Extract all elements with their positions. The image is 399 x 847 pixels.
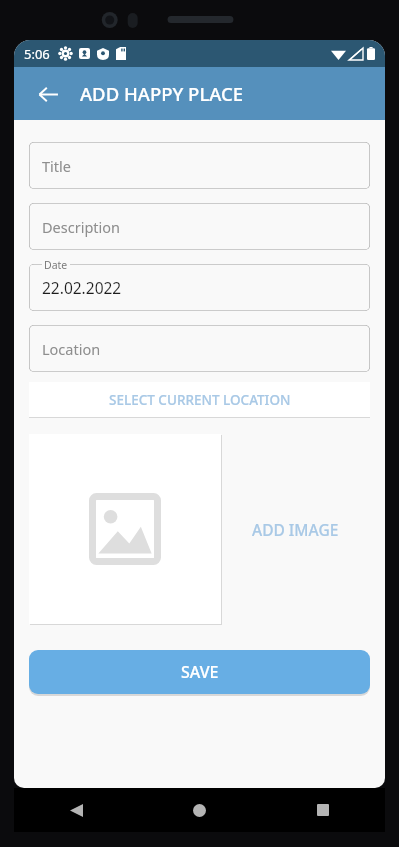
button[interactable]: Recent apps [303,790,343,830]
button[interactable]: Back [28,74,68,114]
button[interactable]: SAVE [29,650,370,694]
staticText: 22.02.2022 [42,277,122,298]
staticText: Location [42,339,101,359]
button[interactable]: ADD IMAGE [244,511,347,548]
button[interactable]: Back [56,790,96,830]
staticText: Date [44,258,68,272]
staticText: ADD HAPPY PLACE [80,81,244,106]
button[interactable] [29,264,370,311]
button[interactable]: Place image [29,434,221,624]
staticText: ADD IMAGE [252,519,339,540]
button[interactable]: Description [29,203,370,250]
button[interactable]: Title [29,142,370,189]
button[interactable]: SELECT CURRENT LOCATION [29,382,370,417]
staticText: SAVE [181,661,219,683]
staticText: SELECT CURRENT LOCATION [109,391,291,409]
staticText: Description [42,217,121,237]
staticText: Title [42,156,71,176]
button[interactable]: Location [29,325,370,372]
button[interactable]: Home [179,790,219,830]
staticText: 5:06 [24,45,50,63]
